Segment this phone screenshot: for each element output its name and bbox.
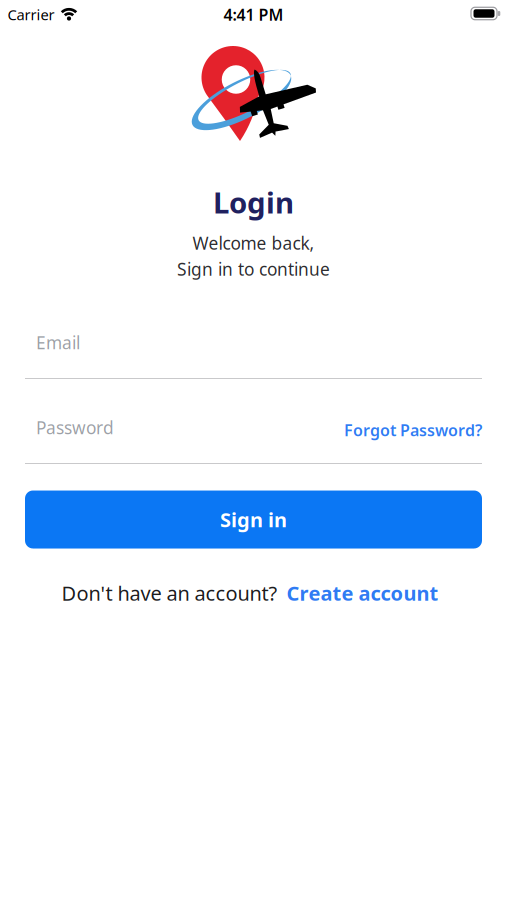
staticText: Welcome back, — [192, 231, 314, 254]
staticText: Don't have an account? — [61, 580, 277, 606]
button[interactable]: Create account — [286, 580, 438, 606]
button[interactable]: Forgot Password? — [282, 419, 482, 441]
staticText: Carrier — [7, 5, 54, 24]
staticText: Password — [36, 416, 114, 439]
button[interactable]: Password — [25, 416, 482, 464]
staticText: Email — [36, 331, 80, 354]
staticText: Create account — [286, 580, 438, 606]
staticText: 4:41 PM — [223, 4, 283, 25]
staticText: Sign in to continue — [177, 257, 330, 280]
button[interactable]: Email — [25, 331, 482, 379]
button[interactable]: Sign in — [25, 490, 482, 548]
staticText: Login — [213, 182, 294, 221]
staticText: Sign in — [220, 506, 287, 533]
staticText: Forgot Password? — [344, 419, 482, 441]
